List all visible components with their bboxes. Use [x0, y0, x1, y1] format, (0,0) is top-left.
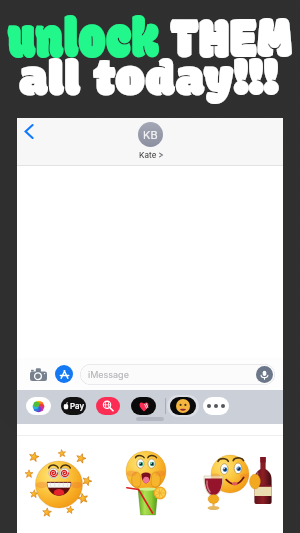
button[interactable]: Dizzy emoji sticker	[26, 448, 92, 518]
staticText: Pay	[70, 401, 85, 411]
button[interactable]: More apps	[203, 397, 229, 415]
button[interactable]: Camera	[28, 364, 48, 384]
button[interactable]: Digital Touch	[131, 397, 156, 415]
staticText: iMessage	[88, 369, 129, 380]
button[interactable]: App Store	[55, 365, 73, 383]
staticText: Kate	[139, 150, 157, 160]
button[interactable]: Record audio	[256, 366, 273, 383]
button[interactable]: Emoji	[170, 397, 196, 415]
staticText: KB	[143, 128, 158, 141]
button[interactable]: Cocktail emoji sticker	[118, 448, 184, 518]
button[interactable]: KB	[138, 122, 163, 160]
button[interactable]: Back	[17, 118, 43, 144]
button[interactable]: Apple Pay	[61, 397, 86, 415]
button[interactable]: Photos	[26, 397, 51, 415]
button[interactable]: Images	[96, 397, 120, 415]
button[interactable]: Wine emoji sticker	[202, 448, 280, 518]
button[interactable]: iMessage	[80, 364, 275, 385]
